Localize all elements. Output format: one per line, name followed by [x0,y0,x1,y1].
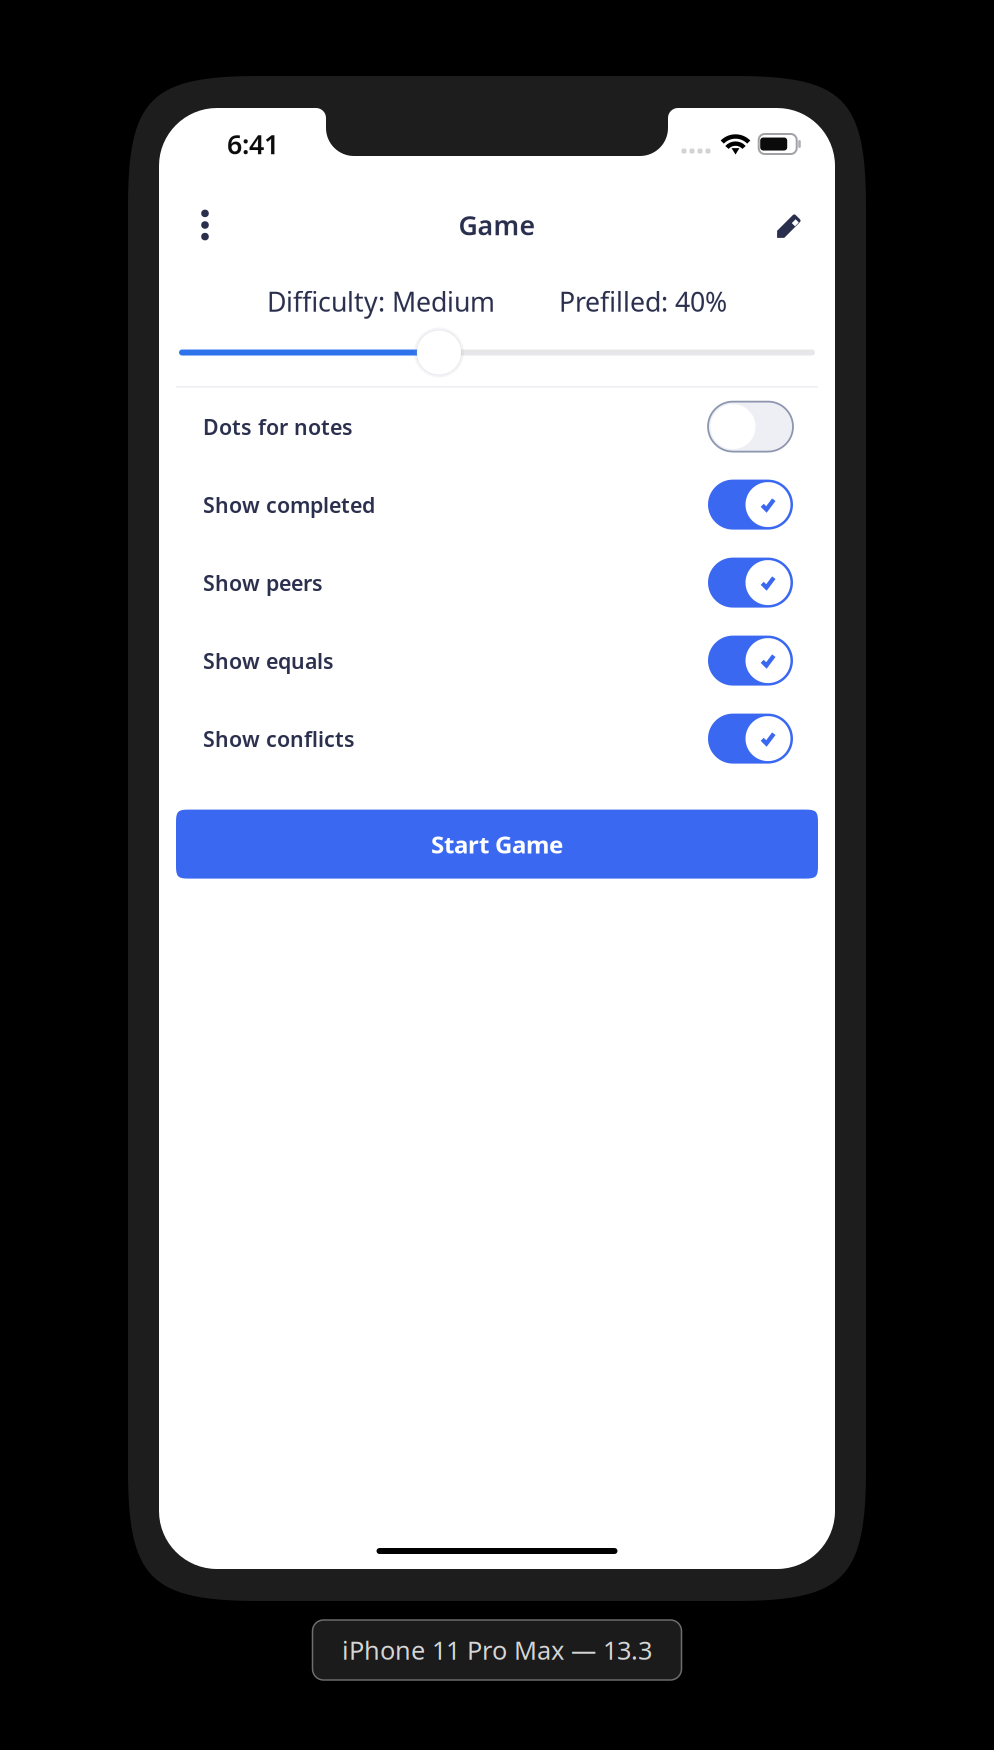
button[interactable]: Show peers [159,544,835,622]
staticText: Difficulty: Medium [267,284,495,319]
staticText: Start Game [431,828,563,860]
button[interactable]: Show conflicts [159,700,835,778]
button[interactable]: Start Game [176,810,818,879]
staticText: 6:41 [227,126,279,162]
staticText: Show completed [203,490,375,519]
button[interactable]: Dots for notes [159,388,835,466]
button[interactable]: Show completed [159,466,835,544]
staticText: Show conflicts [203,724,355,753]
button[interactable]: More options [183,201,227,249]
button[interactable]: Edit [768,201,812,249]
staticText: Game [458,207,535,243]
staticText: Prefilled: 40% [559,284,727,319]
staticText: iPhone 11 Pro Max — 13.3 [342,1633,652,1667]
button[interactable]: Show equals [159,622,835,700]
staticText: Show equals [203,646,334,675]
staticText: Show peers [203,568,323,597]
staticText: Dots for notes [203,412,353,441]
